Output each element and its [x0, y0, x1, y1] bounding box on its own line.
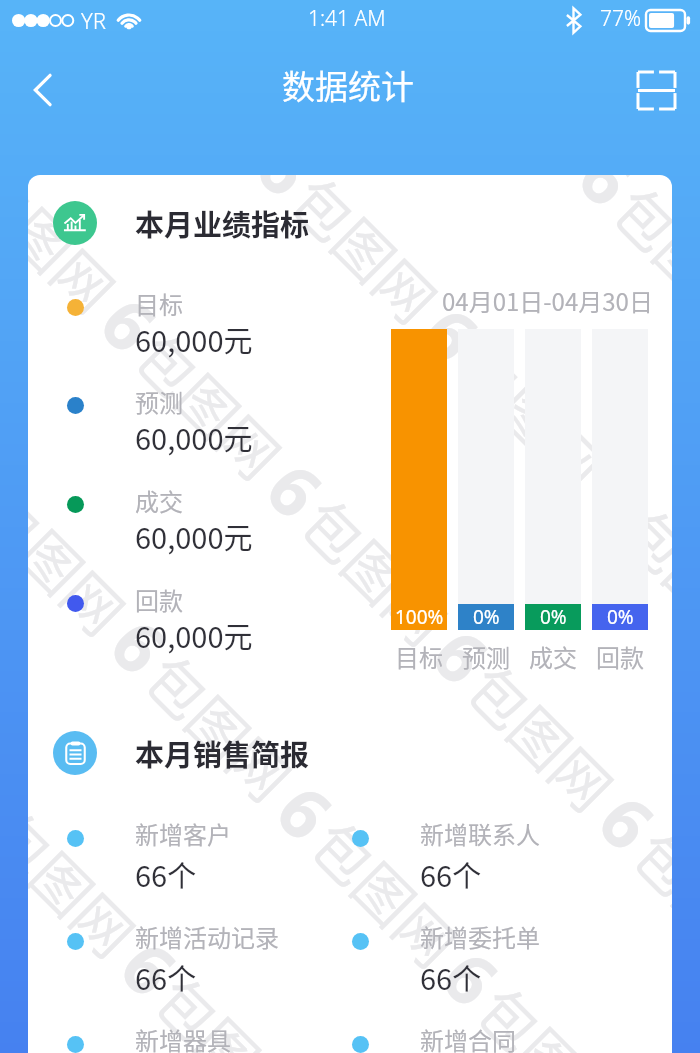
staticText: 6	[414, 607, 510, 704]
staticText: 包图网	[275, 175, 458, 340]
staticText: 回款	[135, 582, 183, 617]
staticText: 数据统计	[282, 61, 414, 109]
staticText: 60,000元	[135, 318, 253, 360]
staticText: 6	[258, 763, 354, 860]
button[interactable]: 新增联系人	[313, 823, 598, 918]
staticText: 6	[580, 773, 672, 870]
staticText: 包图网	[441, 323, 624, 506]
staticText: 预测	[458, 639, 514, 674]
staticText: 66个	[420, 956, 482, 998]
staticText: 包图网	[461, 967, 644, 1053]
staticText: 包图网	[28, 791, 156, 974]
staticText: 包图网	[139, 957, 322, 1053]
staticText: 0%	[607, 604, 634, 630]
staticText: 新增联系人	[420, 816, 540, 851]
staticText: 包图网	[119, 313, 302, 496]
button[interactable]: Scan	[626, 60, 686, 120]
staticText: 66个	[135, 853, 197, 895]
staticText: YR	[81, 5, 106, 35]
staticText: 包图网	[597, 175, 672, 350]
staticText: 0%	[473, 604, 500, 630]
staticText: 包图网	[285, 479, 468, 662]
staticText: 6	[404, 285, 500, 382]
staticText: 新增器具	[135, 1022, 231, 1053]
staticText: 新增活动记录	[135, 919, 279, 954]
staticText: 6	[560, 175, 656, 226]
staticText: 77%	[600, 4, 642, 33]
staticText: 60,000元	[135, 515, 253, 557]
staticText: 包图网	[28, 175, 136, 330]
staticText: 包图网	[617, 811, 672, 994]
staticText: 6	[570, 451, 666, 548]
staticText: 6	[238, 175, 334, 216]
button[interactable]: 新增委托单	[313, 926, 598, 1021]
button[interactable]: 新增活动记录	[28, 926, 313, 1021]
staticText: 60,000元	[135, 614, 253, 656]
staticText: 0%	[540, 604, 567, 630]
staticText: 回款	[592, 639, 648, 674]
staticText: 6	[92, 597, 188, 694]
staticText: 目标	[391, 639, 447, 674]
staticText: 1:41 AM	[308, 4, 386, 33]
staticText: 本月业绩指标	[135, 202, 310, 244]
button[interactable]: 新增器具	[28, 1029, 313, 1053]
staticText: 成交	[135, 483, 183, 518]
staticText: 本月销售简报	[135, 732, 310, 774]
button[interactable]: Back	[14, 62, 70, 118]
staticText: 包图网	[451, 645, 634, 828]
button[interactable]: 新增合同	[313, 1029, 598, 1053]
staticText: 预测	[135, 384, 183, 419]
staticText: 成交	[525, 639, 581, 674]
staticText: 6	[28, 753, 32, 850]
staticText: 包图网	[28, 469, 146, 652]
staticText: 新增委托单	[420, 919, 540, 954]
staticText: 100%	[395, 604, 444, 630]
button[interactable]: 新增客户	[28, 823, 313, 918]
staticText: 66个	[420, 853, 482, 895]
staticText: 66个	[135, 956, 197, 998]
staticText: 目标	[135, 286, 183, 321]
staticText: 6	[424, 929, 520, 1026]
staticText: 包图网	[295, 801, 478, 984]
staticText: 60,000元	[135, 416, 253, 458]
staticText: 包图网	[129, 635, 312, 818]
staticText: 包图网	[607, 489, 672, 672]
staticText: 6	[82, 275, 178, 372]
staticText: 6	[102, 919, 198, 1016]
staticText: 包图网	[431, 175, 614, 184]
staticText: 6	[248, 441, 344, 538]
staticText: 04月01日-04月30日	[442, 283, 653, 318]
staticText: 新增客户	[135, 816, 231, 851]
staticText: 新增合同	[420, 1022, 516, 1053]
